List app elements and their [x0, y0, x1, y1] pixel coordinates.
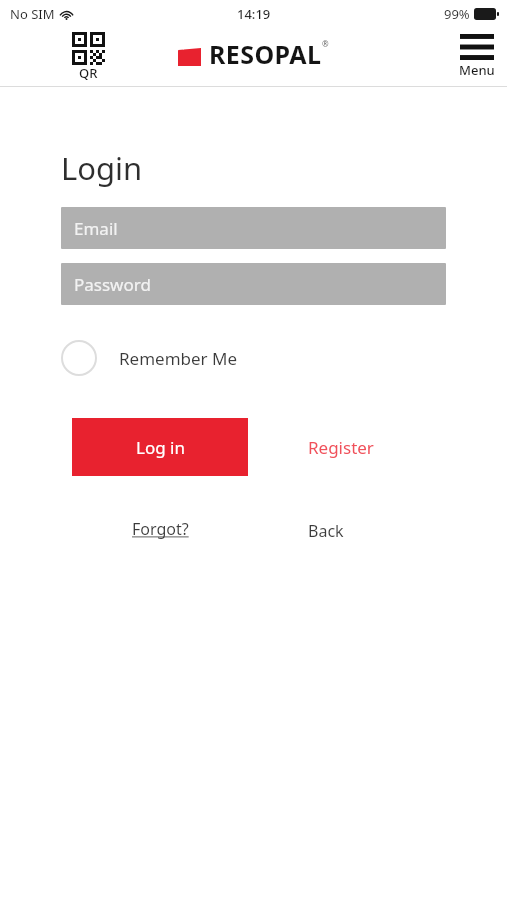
button[interactable]: Back	[286, 518, 366, 544]
staticText: Menu	[459, 61, 495, 79]
button[interactable]: Email	[61, 207, 446, 249]
button[interactable]: RESOPAL	[178, 37, 329, 71]
button[interactable]: Register	[286, 418, 396, 476]
staticText: RESOPAL	[209, 37, 322, 71]
button[interactable]: Forgot?	[72, 518, 248, 540]
staticText: Email	[74, 217, 118, 240]
button[interactable]: Log in	[72, 418, 248, 476]
staticText: Forgot?	[132, 518, 189, 540]
staticText: No SIM	[10, 5, 55, 23]
staticText: Login	[61, 147, 143, 189]
staticText: 14:19	[237, 5, 271, 23]
button[interactable]: Menu	[455, 32, 499, 81]
staticText: Remember Me	[119, 347, 238, 370]
staticText: 99%	[444, 5, 470, 23]
staticText: Password	[74, 273, 151, 296]
button[interactable]: Scan QR code	[68, 30, 109, 84]
staticText: QR	[79, 64, 98, 82]
staticText: Log in	[136, 436, 185, 459]
staticText: Back	[308, 520, 344, 542]
staticText: ®	[322, 38, 329, 49]
button[interactable]: Remember Me	[61, 336, 252, 380]
staticText: Register	[308, 436, 374, 459]
button[interactable]: Password	[61, 263, 446, 305]
